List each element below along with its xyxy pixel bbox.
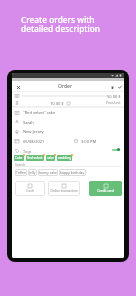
button[interactable]: cake — [47, 156, 54, 160]
button[interactable]: Red velvet — [27, 156, 43, 160]
staticText: cake — [47, 156, 54, 160]
staticText: 50.00 $ — [107, 94, 121, 99]
button[interactable]: wedding — [58, 156, 71, 160]
staticText: happy birthday — [60, 170, 85, 175]
staticText: 05/08/2021 — [23, 139, 45, 144]
staticText: Toffee — [16, 170, 26, 175]
button[interactable]: Close — [14, 83, 22, 91]
staticText: Credit card — [97, 189, 114, 193]
staticText: Price/unit — [106, 101, 121, 105]
button[interactable]: Sarah — [15, 117, 121, 127]
staticText: Cash — [26, 189, 34, 193]
staticText: Order — [22, 83, 108, 90]
button[interactable]: honey cake — [39, 170, 57, 175]
staticText: Online transaction — [50, 189, 78, 193]
button[interactable]: Online transaction — [48, 181, 80, 196]
staticText: Sarah — [23, 120, 34, 125]
staticText: honey cake — [39, 170, 57, 175]
button[interactable]: Cake — [15, 156, 23, 160]
button[interactable]: Toffee — [16, 170, 26, 175]
button[interactable]: 50.00 $ — [15, 92, 121, 100]
staticText: Tags — [23, 149, 32, 154]
button[interactable]: Jelly — [29, 170, 36, 175]
staticText: Cake — [15, 156, 23, 160]
button[interactable]: New Jersey — [15, 127, 121, 136]
button[interactable]: 10.00 $ — [15, 100, 121, 106]
button[interactable]: Save — [116, 83, 124, 91]
staticText: wedding — [58, 156, 71, 160]
button[interactable]: Cash — [15, 181, 45, 196]
button[interactable]: Credit card — [89, 181, 122, 196]
staticText: 3:00 PM — [81, 139, 97, 144]
staticText: "Red velvet" cake — [23, 110, 56, 115]
staticText: Create orders with detailed description — [21, 14, 100, 35]
button[interactable]: happy birthday — [60, 170, 85, 175]
button[interactable]: Toggle — [112, 148, 120, 151]
staticText: Red velvet — [27, 156, 43, 160]
staticText: Search — [15, 163, 26, 166]
staticText: New Jersey — [23, 129, 44, 134]
staticText: 10.00 $ — [50, 101, 64, 106]
button[interactable]: 05/08/2021 — [15, 136, 121, 146]
button[interactable]: Delete — [108, 83, 116, 91]
staticText: Jelly — [29, 170, 36, 175]
button[interactable]: "Red velvet" cake — [15, 108, 121, 117]
